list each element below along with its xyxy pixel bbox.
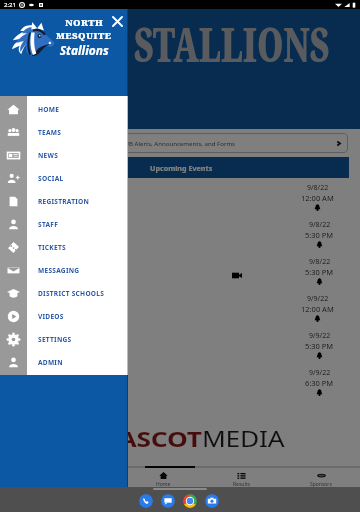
staticText: VIDEOS (38, 312, 64, 321)
staticText: 5:30 PM (305, 267, 334, 277)
staticText: NEWS (38, 151, 59, 160)
button[interactable]: 9/8/22 (0, 218, 360, 255)
button[interactable]: ADMIN (0, 351, 128, 374)
staticText: MEDIA (202, 425, 285, 454)
staticText: 9/9/22 (309, 368, 331, 378)
staticText: 9/8/22 (309, 220, 331, 230)
staticText: 6:30 PM (305, 378, 334, 388)
button[interactable]: Chrome (183, 494, 197, 508)
button[interactable]: Results (202, 468, 281, 487)
staticText: 9/9/22 (309, 331, 331, 341)
button[interactable]: 9/9/22 (0, 366, 360, 403)
button[interactable]: STAFF (0, 213, 128, 236)
staticText: SOCIAL (38, 174, 64, 183)
staticText: HUB Alerts, Announcements, and Forms (120, 139, 236, 147)
button[interactable]: NEWS (0, 144, 128, 167)
staticText: SETTINGS (38, 335, 72, 344)
button[interactable]: MESSAGING (0, 259, 128, 282)
staticText: DISTRICT SCHOOLS (38, 289, 105, 298)
staticText: ADMIN (38, 358, 63, 367)
staticText: Upcoming Events (150, 163, 213, 173)
button[interactable]: VIDEOS (0, 305, 128, 328)
staticText: Home (156, 481, 171, 487)
staticText: 5:30 PM (305, 230, 334, 240)
staticText: 12:00 AM (301, 304, 334, 314)
button[interactable]: Camera (205, 494, 219, 508)
button[interactable]: SOCIAL (0, 167, 128, 190)
staticText: TICKETS (38, 243, 66, 252)
staticText: 5:30 PM (305, 341, 334, 351)
button[interactable]: Sponsors (281, 468, 360, 487)
button[interactable]: HUB Alerts, Announcements, and Forms (8, 133, 348, 153)
staticText: REGISTRATION (38, 197, 90, 206)
button[interactable]: Messages (161, 494, 175, 508)
button[interactable]: HOME (0, 98, 128, 121)
button[interactable]: REGISTRATION (0, 190, 128, 213)
staticText: NORTH (65, 16, 104, 29)
staticText: 9/8/22 (309, 257, 331, 267)
button[interactable]: 9/8/22 (0, 181, 360, 218)
staticText: Results (233, 481, 250, 487)
staticText: MASCOT (94, 425, 202, 454)
staticText: Stallions (60, 42, 109, 59)
staticText: 12:00 AM (301, 193, 334, 203)
button[interactable]: TICKETS (0, 236, 128, 259)
button[interactable]: Close menu (109, 13, 125, 29)
staticText: MESSAGING (38, 266, 80, 275)
button[interactable]: Phone (139, 494, 153, 508)
staticText: Sponsors (310, 481, 332, 487)
button[interactable]: TEAMS (0, 121, 128, 144)
button[interactable]: DISTRICT SCHOOLS (0, 282, 128, 305)
button[interactable]: 9/9/22 (0, 329, 360, 366)
staticText: STAFF (38, 220, 59, 229)
staticText: HOME (38, 105, 60, 114)
staticText: 9/9/22 (307, 294, 329, 304)
staticText: 9/8/22 (307, 183, 329, 193)
button[interactable]: 9/9/22 (0, 292, 360, 329)
staticText: 2:21 (4, 1, 16, 9)
staticText: MESQUITE (56, 28, 112, 42)
staticText: STALLIONS (134, 12, 330, 76)
button[interactable]: SETTINGS (0, 328, 128, 351)
button[interactable]: 9/8/22 (0, 255, 360, 292)
staticText: TEAMS (38, 128, 62, 137)
button[interactable]: Home (124, 468, 202, 487)
